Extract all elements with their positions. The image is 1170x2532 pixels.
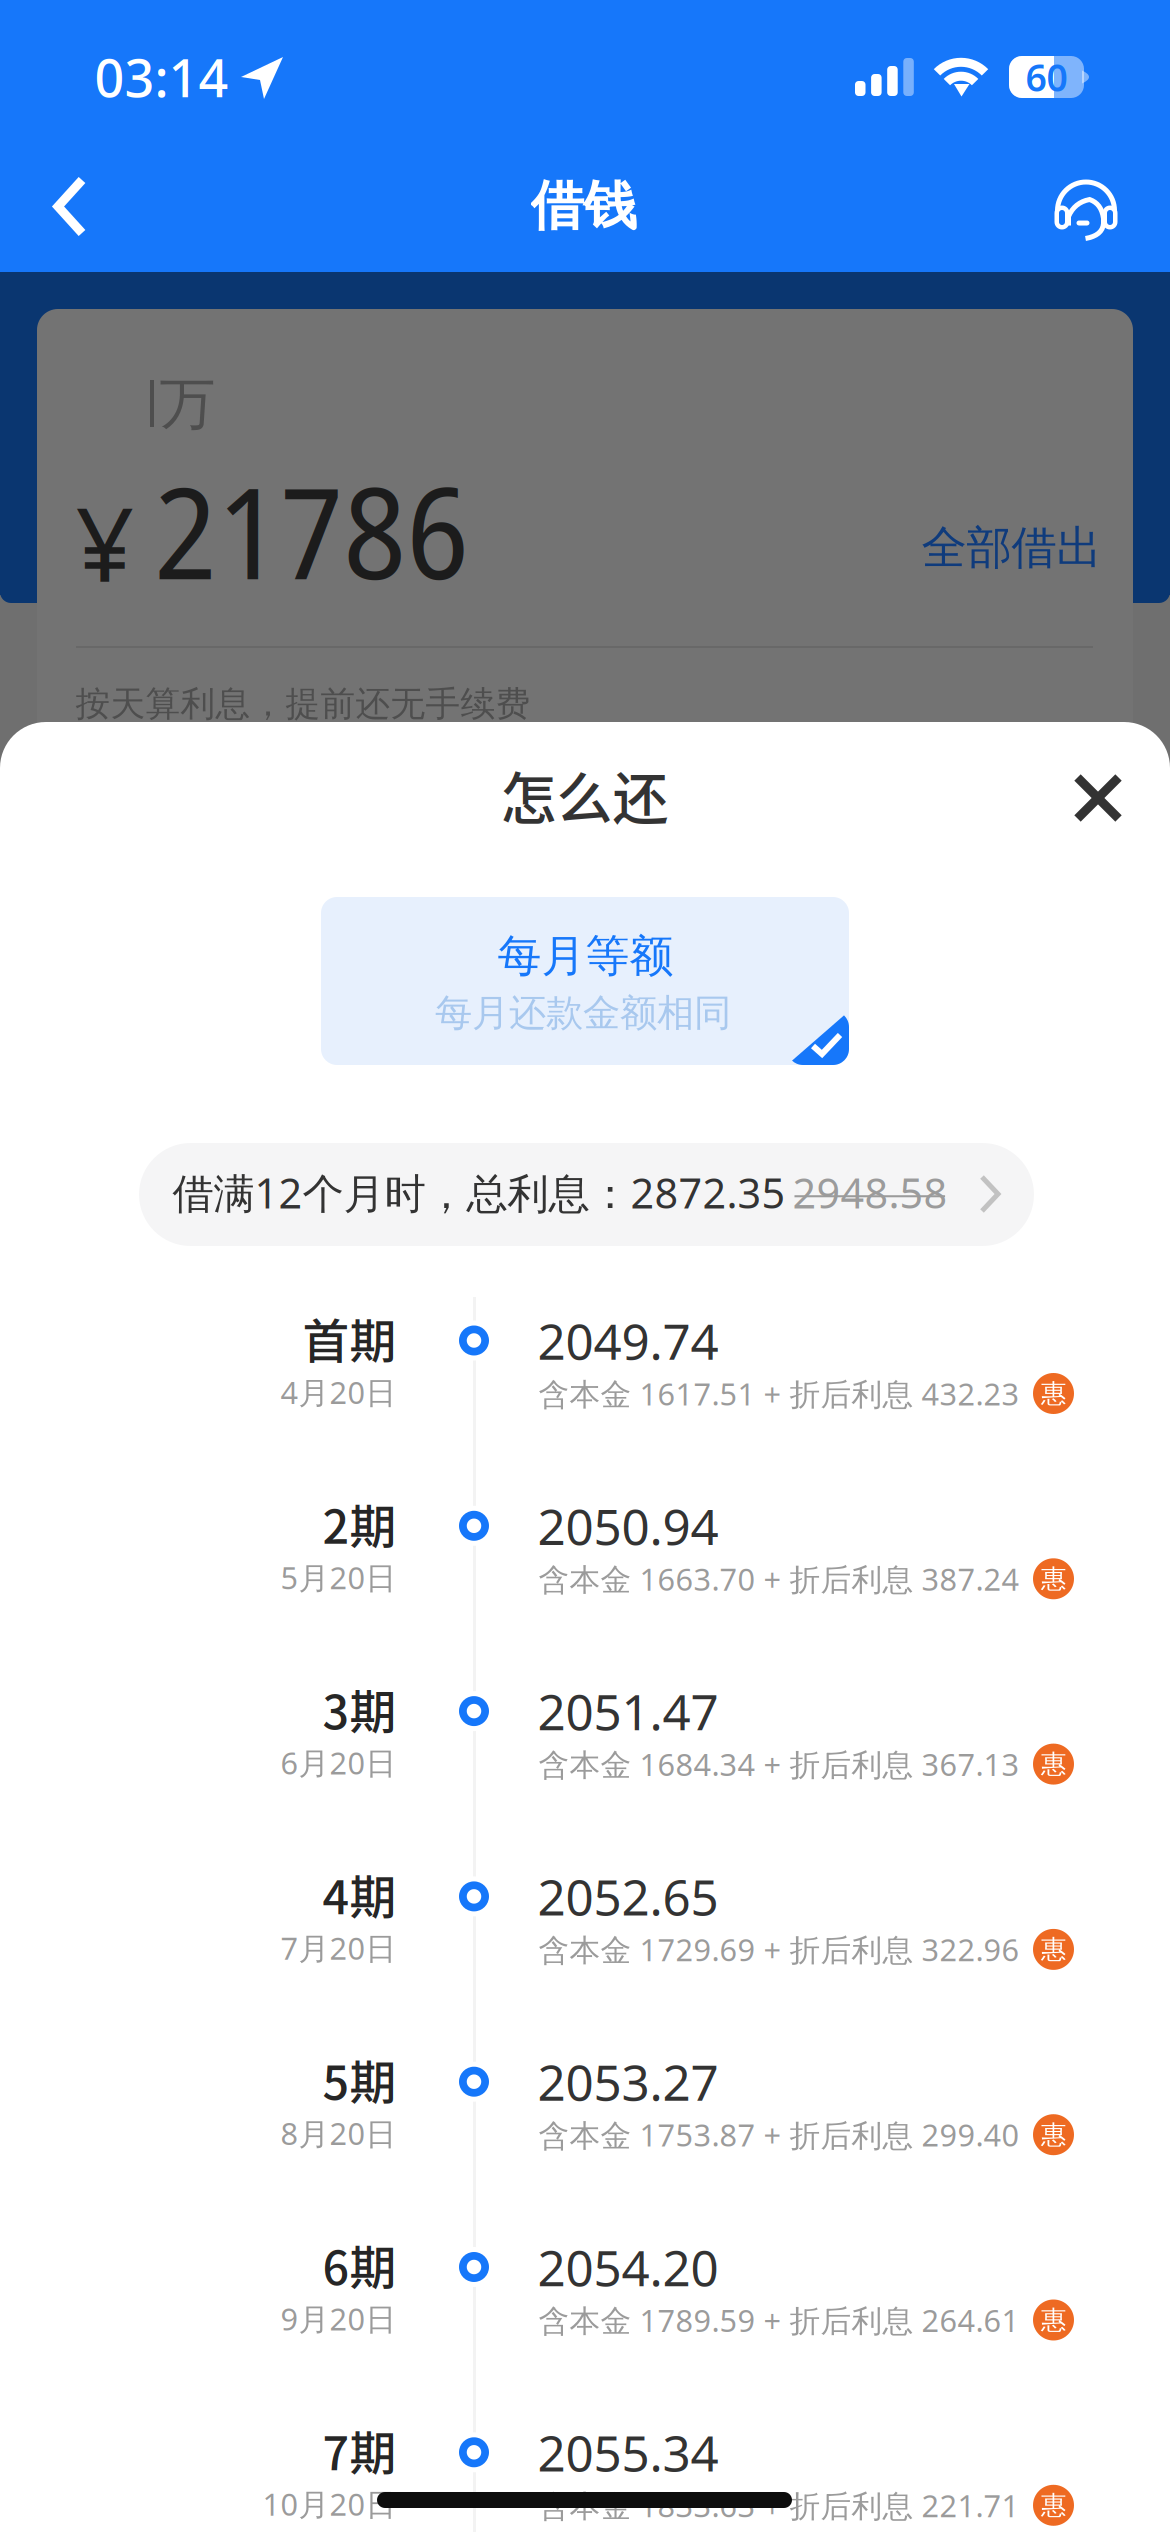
- button[interactable]: 借满12个月时，总利息：2872.35: [139, 1143, 1034, 1246]
- staticText: 借钱: [530, 173, 636, 239]
- staticText: 2051.47: [537, 1678, 718, 1744]
- staticText: 6月20日: [280, 1742, 396, 1783]
- staticText: 惠: [1041, 1748, 1066, 1780]
- staticText: 9月20日: [280, 2298, 396, 2339]
- staticText: 60: [1025, 52, 1067, 102]
- staticText: 每月等额: [497, 929, 673, 983]
- staticText: 借满12个月时，总利息：2872.35: [172, 1165, 785, 1220]
- button[interactable]: 6期: [0, 2219, 1170, 2369]
- staticText: 5月20日: [280, 1557, 396, 1598]
- staticText: 含本金 1617.51 + 折后利息 432.23: [538, 1373, 1019, 1414]
- staticText: 全部借出: [921, 520, 1101, 576]
- staticText: 按天算利息，提前还无手续费: [75, 683, 530, 725]
- staticText: 8月20日: [280, 2113, 396, 2153]
- staticText: 2050.94: [537, 1493, 718, 1558]
- staticText: 2049.74: [537, 1308, 718, 1373]
- staticText: 万: [159, 370, 215, 438]
- staticText: ¥: [75, 474, 134, 610]
- button[interactable]: 关闭: [1044, 744, 1152, 852]
- staticText: 惠: [1041, 2304, 1066, 2335]
- staticText: 怎么还: [500, 754, 668, 835]
- staticText: 2055.34: [537, 2419, 718, 2485]
- staticText: 6期: [322, 2231, 396, 2298]
- staticText: 10月20日: [262, 2483, 396, 2524]
- staticText: 2052.65: [537, 1864, 718, 1929]
- staticText: 惠: [1041, 2119, 1066, 2150]
- staticText: 5期: [322, 2045, 396, 2113]
- button[interactable]: 5期: [0, 2034, 1170, 2184]
- staticText: 3期: [322, 1675, 396, 1742]
- staticText: 惠: [1041, 1563, 1066, 1594]
- staticText: 含本金 1833.63 + 折后利息 221.71: [538, 2485, 1019, 2526]
- button[interactable]: 客服: [1031, 153, 1141, 263]
- staticText: 2期: [322, 1489, 396, 1557]
- button[interactable]: 返回: [58, 150, 174, 262]
- staticText: 4期: [322, 1860, 396, 1928]
- button[interactable]: 2期: [0, 1478, 1170, 1628]
- staticText: 7月20日: [280, 1927, 396, 1968]
- staticText: 惠: [1041, 1378, 1066, 1409]
- staticText: 21786: [154, 445, 469, 616]
- staticText: 7期: [322, 2416, 396, 2484]
- staticText: 含本金 1663.70 + 折后利息 387.24: [538, 1558, 1019, 1599]
- staticText: 惠: [1041, 2490, 1066, 2521]
- staticText: 每月还款金额相同: [435, 990, 731, 1036]
- staticText: 4月20日: [280, 1372, 396, 1412]
- staticText: 含本金 1729.69 + 折后利息 322.96: [538, 1929, 1019, 1970]
- staticText: 首期: [302, 1304, 396, 1372]
- staticText: 含本金 1789.59 + 折后利息 264.61: [538, 2300, 1019, 2340]
- button[interactable]: 4期: [0, 1848, 1170, 1998]
- button[interactable]: 每月等额: [321, 897, 849, 1065]
- button[interactable]: 7期: [0, 2404, 1170, 2532]
- staticText: 2053.27: [537, 2049, 718, 2114]
- staticText: 2948.58: [792, 1165, 947, 1220]
- button[interactable]: 首期: [0, 1292, 1170, 1442]
- staticText: 含本金 1753.87 + 折后利息 299.40: [538, 2114, 1019, 2155]
- staticText: 2054.20: [537, 2234, 718, 2300]
- button[interactable]: 3期: [0, 1663, 1170, 1813]
- staticText: 惠: [1041, 1934, 1066, 1965]
- staticText: 含本金 1684.34 + 折后利息 367.13: [538, 1744, 1019, 1784]
- staticText: 03:14: [94, 42, 228, 112]
